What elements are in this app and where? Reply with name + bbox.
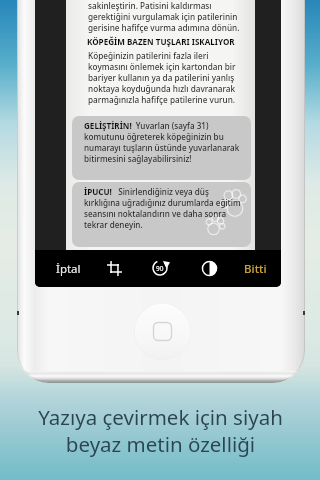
button[interactable]: Contrast xyxy=(194,253,224,283)
staticText: tekrar deneyin. xyxy=(84,219,143,230)
staticText: KÖPEĞİM BAZEN TUŞLARI ISKALIYOR xyxy=(87,36,235,47)
button[interactable]: Home button xyxy=(134,303,191,360)
staticText: numarayı tuşların üstünde yuvarlanarak xyxy=(84,142,240,153)
staticText: İPUCU! Sinirlendiğiniz veya düş xyxy=(84,186,209,197)
staticText: bariyer kullanın ya da patilerini yanlış xyxy=(88,72,235,83)
staticText: GELİŞTİRİN! Yuvarlan (sayfa 31) xyxy=(84,120,209,131)
staticText: Köpeğinizin patilerini fazla ileri xyxy=(88,50,209,61)
staticText: sakinleştirin. Patisini kaldırması xyxy=(88,0,212,11)
staticText: Bitti xyxy=(244,261,267,277)
staticText: seansını noktalandırın ve daha sonra xyxy=(84,208,227,219)
staticText: bitirmesini sağlayabilirsiniz! xyxy=(84,153,192,164)
staticText: İptal xyxy=(56,261,81,277)
staticText: gerisine hafifçe vurma adımına dönün. xyxy=(88,22,240,33)
staticText: Yazıya çevirmek için siyah beyaz metin ö… xyxy=(38,403,283,458)
staticText: parmağınızla hafifçe patilerine vurun. xyxy=(88,94,235,105)
staticText: 90 xyxy=(156,264,164,273)
button[interactable]: İptal xyxy=(47,250,89,287)
staticText: gerektiğini vurgulamak için patilerinin xyxy=(88,11,238,22)
button[interactable]: Crop xyxy=(99,253,129,283)
button[interactable]: Rotate 90 degrees xyxy=(145,253,175,283)
staticText: noktaya koyduğunda hızlı davranarak xyxy=(88,83,236,94)
staticText: komutunu öğreterek köpeğinizin bu xyxy=(84,131,224,142)
staticText: kırklığına uğradığınız durumlarda eğitim xyxy=(84,197,241,208)
staticText: koymasını önlemek için kartondan bir xyxy=(88,61,236,72)
button[interactable]: Bitti xyxy=(235,250,275,287)
